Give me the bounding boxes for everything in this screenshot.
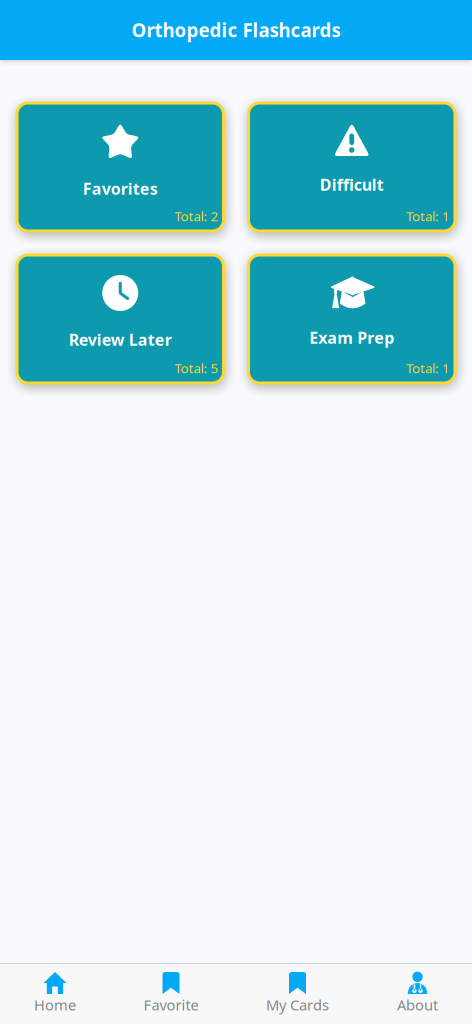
staticText: My Cards <box>266 995 329 1014</box>
staticText: Total: 1 <box>406 359 450 377</box>
staticText: Orthopedic Flashcards <box>131 18 340 42</box>
staticText: Review Later <box>69 329 172 350</box>
staticText: Total: 2 <box>174 207 218 225</box>
staticText: About <box>397 995 438 1014</box>
staticText: Favorites <box>83 178 158 199</box>
button[interactable]: Exam Prep <box>248 255 455 383</box>
button[interactable]: Home <box>0 963 110 1024</box>
staticText: Home <box>34 995 76 1014</box>
button[interactable]: Favorites <box>17 103 223 231</box>
button[interactable]: Difficult <box>248 103 455 231</box>
button[interactable]: About <box>363 963 472 1024</box>
button[interactable]: My Cards <box>232 963 363 1024</box>
button[interactable]: Review Later <box>17 255 223 383</box>
staticText: Difficult <box>320 174 384 195</box>
button[interactable]: Favorite <box>110 963 232 1024</box>
staticText: Exam Prep <box>309 327 394 348</box>
staticText: Total: 5 <box>174 359 218 377</box>
staticText: Total: 1 <box>406 207 450 225</box>
staticText: Favorite <box>143 995 198 1014</box>
